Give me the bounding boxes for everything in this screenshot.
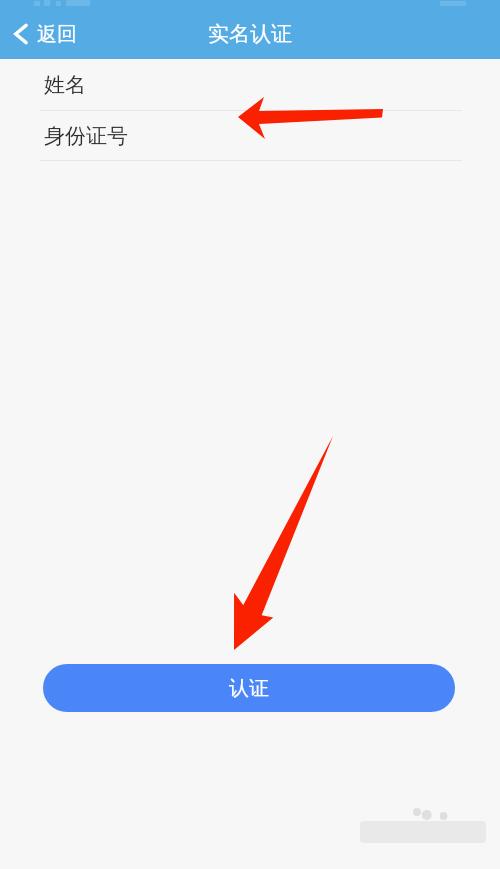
- staticText: 实名认证: [208, 21, 292, 47]
- staticText: 认证: [229, 676, 269, 701]
- button[interactable]: 认证: [43, 664, 455, 712]
- button[interactable]: 身份证号: [0, 111, 500, 161]
- staticText: 姓名: [44, 72, 86, 98]
- staticText: 返回: [37, 22, 77, 47]
- staticText: 身份证号: [44, 123, 128, 149]
- button[interactable]: 返回 Back: [0, 11, 89, 57]
- button[interactable]: 姓名: [0, 59, 500, 111]
